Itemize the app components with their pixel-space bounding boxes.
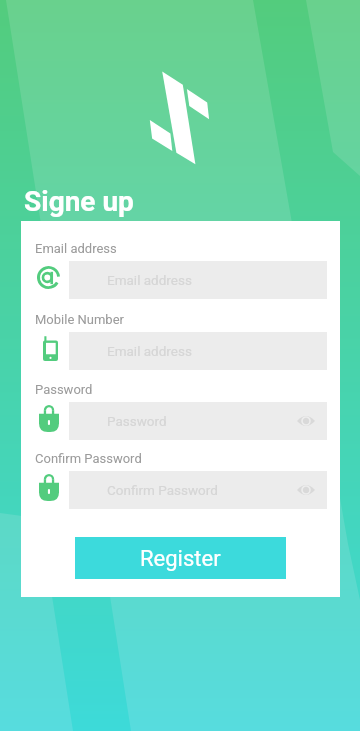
staticText: Signe up [24, 185, 134, 218]
staticText: Register [140, 546, 221, 572]
button[interactable]: Register [75, 537, 286, 579]
button[interactable]: Password [69, 402, 327, 440]
staticText: Email address [107, 272, 192, 288]
button[interactable]: Email address [69, 261, 327, 299]
button[interactable]: Confirm Password [69, 471, 327, 509]
button[interactable]: Show password [294, 478, 318, 502]
button[interactable]: Show password [294, 409, 318, 433]
staticText: Confirm Password [107, 482, 218, 498]
staticText: Confirm Password [35, 451, 142, 466]
staticText: Email address [35, 241, 117, 256]
staticText: Mobile Number [35, 312, 124, 327]
staticText: Password [107, 413, 167, 429]
staticText: Password [35, 382, 93, 397]
button[interactable]: Email address [69, 332, 327, 370]
staticText: Email address [107, 343, 192, 359]
